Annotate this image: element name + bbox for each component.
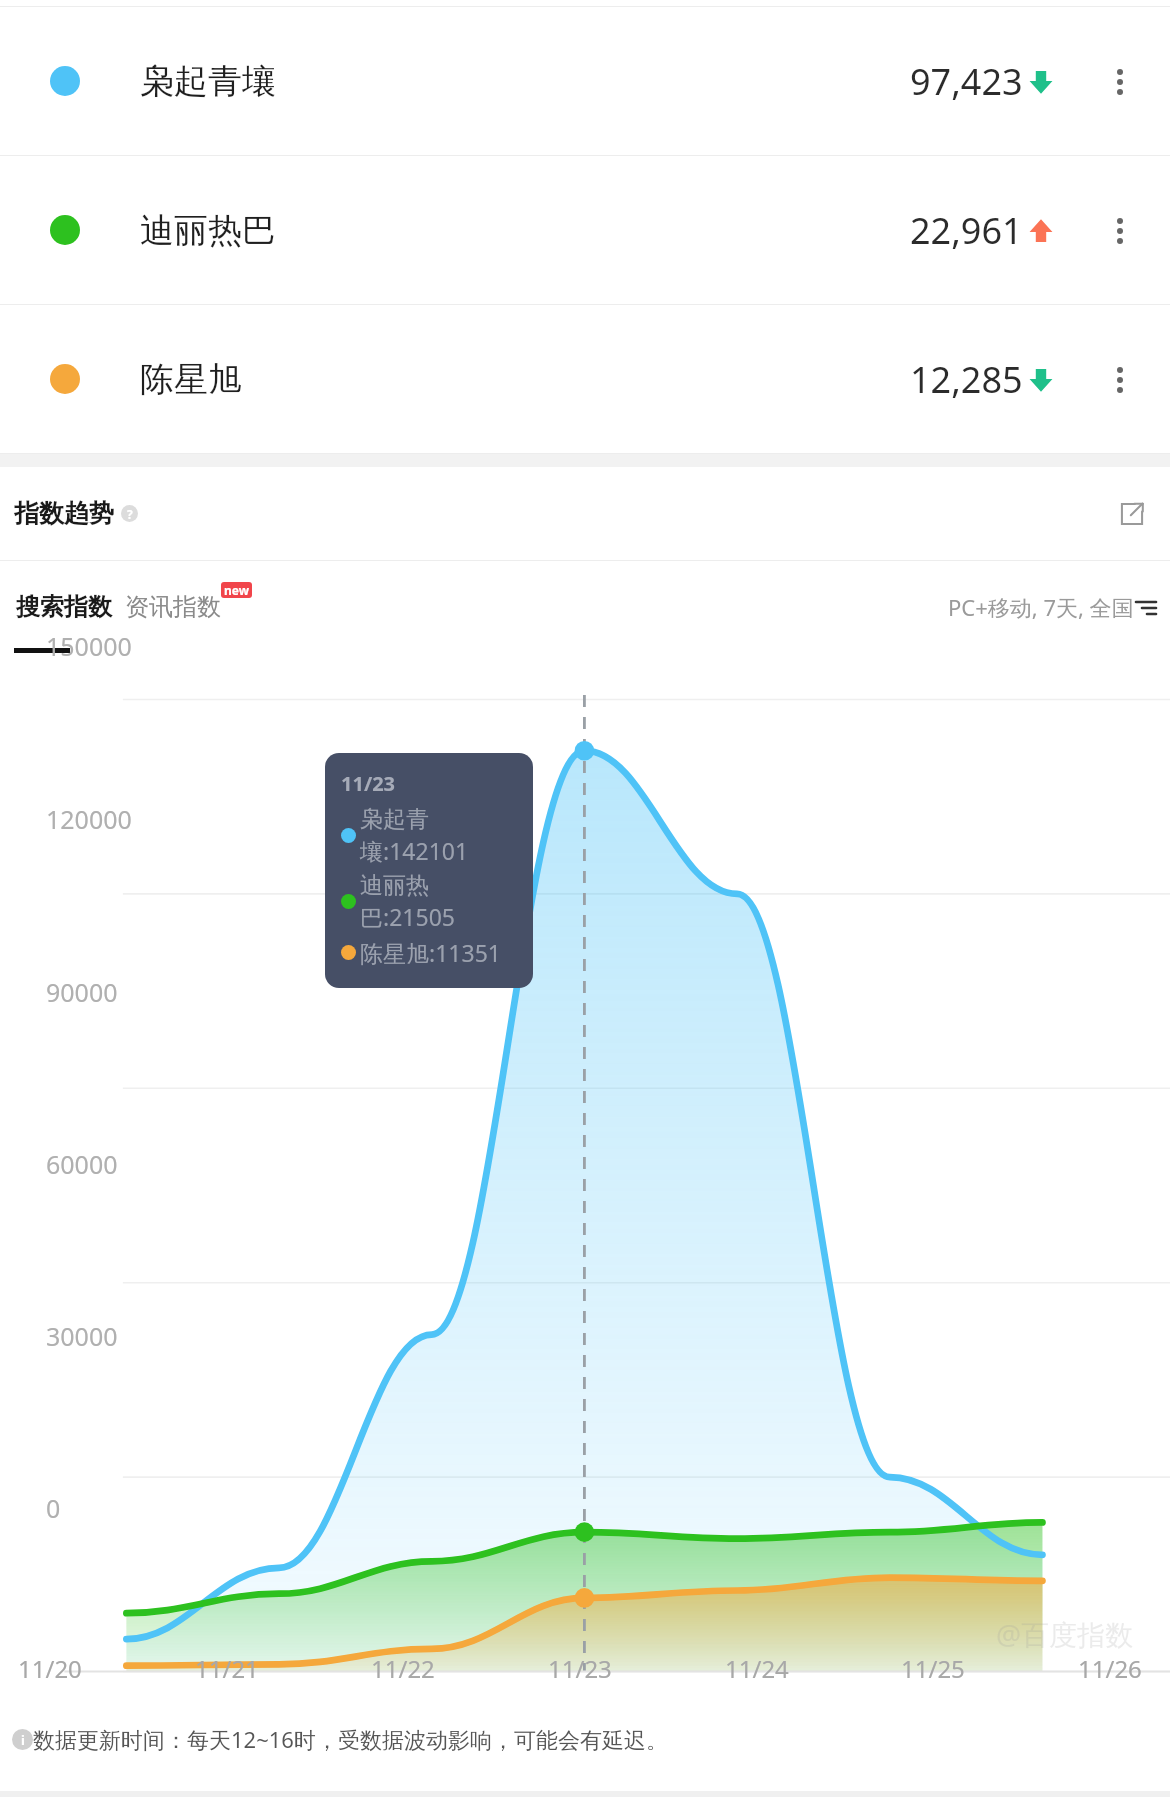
staticText: 11/23 bbox=[341, 770, 396, 797]
staticText: 12,285 bbox=[910, 355, 1023, 404]
staticText: 枭起青壤:142101 bbox=[360, 805, 521, 866]
staticText: 11/24 bbox=[725, 1652, 811, 1685]
button[interactable]: 枭起青壤 bbox=[0, 7, 1170, 155]
staticText: 11/25 bbox=[901, 1652, 987, 1685]
staticText: 枭起青壤 bbox=[140, 60, 276, 103]
staticText: 11/22 bbox=[371, 1652, 457, 1685]
staticText: 120000 bbox=[46, 802, 132, 836]
staticText: 150000 bbox=[46, 629, 132, 663]
button[interactable]: 更多 bbox=[1096, 356, 1144, 404]
staticText: 搜索指数 bbox=[16, 592, 112, 622]
staticText: 0 bbox=[46, 1491, 61, 1525]
staticText: 资讯指数 bbox=[125, 592, 221, 622]
staticText: 陈星旭 bbox=[140, 358, 242, 401]
staticText: 11/26 bbox=[1078, 1652, 1164, 1685]
staticText: 11/23 bbox=[548, 1652, 634, 1685]
button[interactable]: PC+移动, 7天, 全国 bbox=[948, 592, 1156, 622]
button[interactable]: 搜索指数 bbox=[14, 592, 114, 622]
staticText: @百度指数 bbox=[996, 1615, 1134, 1653]
button[interactable]: 更多 bbox=[1096, 58, 1144, 106]
button[interactable]: 指数趋势 bbox=[14, 498, 138, 529]
staticText: PC+移动, 7天, 全国 bbox=[948, 592, 1134, 622]
staticText: 22,961 bbox=[910, 206, 1023, 255]
staticText: 迪丽热巴 bbox=[140, 209, 276, 252]
button[interactable]: 资讯指数 bbox=[125, 592, 252, 622]
staticText: 60000 bbox=[46, 1147, 118, 1181]
staticText: new bbox=[224, 582, 249, 598]
staticText: 97,423 bbox=[910, 57, 1023, 106]
staticText: 11/20 bbox=[18, 1652, 104, 1685]
staticText: 11/21 bbox=[195, 1652, 281, 1685]
staticText: 迪丽热巴:21505 bbox=[360, 871, 521, 932]
staticText: ? bbox=[127, 506, 133, 522]
button[interactable]: 迪丽热巴 bbox=[0, 156, 1170, 304]
staticText: i bbox=[21, 1731, 25, 1749]
staticText: 指数趋势 bbox=[14, 498, 114, 529]
button[interactable]: 陈星旭 bbox=[0, 305, 1170, 453]
staticText: 陈星旭:11351 bbox=[360, 937, 501, 968]
staticText: 数据更新时间：每天12~16时，受数据波动影响，可能会有延迟。 bbox=[33, 1724, 668, 1754]
button[interactable]: 分享 bbox=[1114, 496, 1150, 532]
staticText: 90000 bbox=[46, 975, 118, 1009]
button[interactable]: 11/23 bbox=[325, 753, 533, 988]
staticText: 30000 bbox=[46, 1319, 118, 1353]
button[interactable]: 更多 bbox=[1096, 207, 1144, 255]
